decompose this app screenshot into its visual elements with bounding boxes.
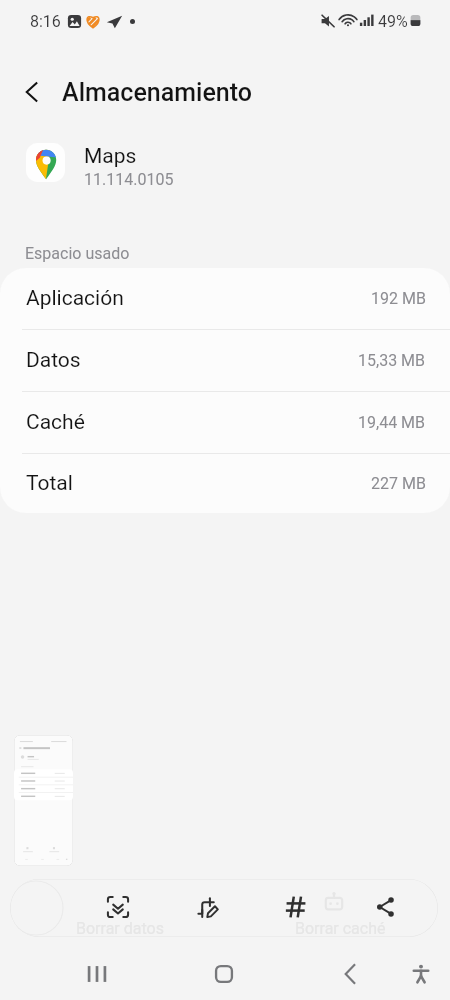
- staticText: Espacio usado: [25, 244, 130, 263]
- staticText: 192 MB: [371, 289, 426, 308]
- staticText: 11.114.0105: [84, 170, 174, 189]
- button[interactable]: Share: [374, 895, 398, 919]
- button[interactable]: Home: [206, 956, 242, 992]
- staticText: Total: [26, 471, 73, 496]
- staticText: 19,44 MB: [358, 413, 426, 432]
- button[interactable]: Back: [332, 956, 368, 992]
- button[interactable]: Datos: [0, 330, 450, 391]
- staticText: Aplicación: [26, 286, 124, 311]
- button[interactable]: Recents: [79, 956, 115, 992]
- button[interactable]: Borrar datos: [76, 919, 164, 938]
- staticText: 49%: [378, 12, 408, 31]
- staticText: Almacenamiento: [62, 78, 252, 107]
- button[interactable]: Total: [0, 454, 450, 513]
- button[interactable]: Crop and edit: [196, 895, 220, 919]
- button[interactable]: Accessibility: [403, 956, 439, 992]
- button[interactable]: Scroll capture: [106, 895, 130, 919]
- staticText: Borrar datos: [76, 919, 164, 938]
- staticText: 227 MB: [371, 474, 426, 493]
- button[interactable]: Back: [14, 74, 50, 110]
- staticText: 15,33 MB: [358, 351, 426, 370]
- staticText: Borrar caché: [295, 919, 386, 938]
- staticText: Caché: [26, 410, 85, 435]
- button[interactable]: Screenshot preview: [14, 735, 73, 866]
- staticText: 8:16: [30, 12, 61, 31]
- staticText: Maps: [84, 144, 137, 169]
- button[interactable]: Aplicación: [0, 268, 450, 329]
- staticText: Datos: [26, 348, 81, 373]
- button[interactable]: Borrar caché: [295, 919, 386, 938]
- button[interactable]: Caché: [0, 392, 450, 453]
- button[interactable]: Tags: [284, 895, 308, 919]
